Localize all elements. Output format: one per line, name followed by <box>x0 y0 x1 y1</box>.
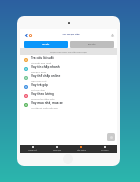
staticText: Lãi suất mới nhất <box>31 61 52 64</box>
staticText: Không cần đảm bảo <box>31 97 55 100</box>
staticText: VAY MƯỢN TIỀN <box>62 33 80 36</box>
button[interactable]: Bán tiền <box>70 41 114 48</box>
button[interactable]: Vay tiền <box>24 41 68 48</box>
staticText: Sản phẩm <box>77 149 86 152</box>
staticText: Ưu đãi lãi suất hấp dẫn <box>31 106 59 109</box>
button[interactable]: Vay trả góp <box>20 82 117 91</box>
button[interactable]: Refresh <box>27 32 33 38</box>
staticText: Cá nhân <box>101 149 109 152</box>
staticText: Vay tiền <box>42 43 50 46</box>
staticText: Giao dịch <box>53 149 62 152</box>
button[interactable]: Trang chủ <box>20 145 45 153</box>
button[interactable]: Notifications <box>109 32 115 38</box>
button[interactable]: Vay tín chấp nhanh <box>20 64 117 73</box>
button[interactable]: Tra cứu lãi suất <box>20 55 117 64</box>
button[interactable]: Vay thế chấp online <box>20 73 117 82</box>
button[interactable]: Back <box>23 32 29 38</box>
staticText: Thủ tục đơn <box>31 88 46 91</box>
staticText: Tra cứu lãi suất <box>31 56 54 60</box>
staticText: Vay tín chấp nhanh <box>31 65 60 69</box>
button[interactable]: Cá nhân <box>93 145 117 153</box>
staticText: Duyệt 5 phút <box>31 70 47 73</box>
button[interactable]: Vay theo lương <box>20 91 117 100</box>
button[interactable]: Vay mua nhà, mua xe <box>20 100 117 109</box>
staticText: Chọn hình thức vay tiền phù hợp <box>50 50 87 53</box>
button[interactable]: Giao dịch <box>45 145 69 153</box>
staticText: Hạn mức 5 tỷ <box>31 79 47 82</box>
staticText: Bán tiền <box>88 43 96 46</box>
staticText: Vay trả góp <box>31 83 49 87</box>
staticText: Vay thế chấp online <box>31 74 61 78</box>
staticText: Vay theo lương <box>31 92 54 96</box>
button[interactable]: Scroll to top <box>107 133 115 141</box>
staticText: Vay mua nhà, mua xe <box>31 101 63 105</box>
staticText: Trang chủ <box>28 149 37 152</box>
button[interactable]: Sản phẩm <box>69 145 93 153</box>
